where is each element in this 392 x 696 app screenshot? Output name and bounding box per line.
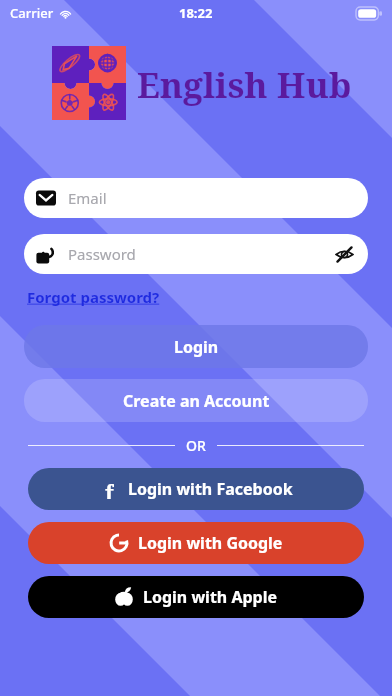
staticText: Login with Google xyxy=(138,532,283,554)
staticText: Password xyxy=(68,244,332,264)
button[interactable]: Password xyxy=(24,234,368,274)
staticText: Forgot password? xyxy=(27,287,160,307)
staticText: f xyxy=(105,479,114,499)
button[interactable]: Email xyxy=(24,178,368,218)
staticText: Email xyxy=(68,188,356,208)
button[interactable]: Login xyxy=(24,325,368,368)
button[interactable]: f xyxy=(28,468,364,510)
button[interactable]: Login with Google xyxy=(28,522,364,564)
button[interactable]: Show password xyxy=(332,242,356,266)
staticText: OR xyxy=(186,436,206,455)
staticText: English Hub xyxy=(137,61,352,109)
staticText: Login xyxy=(174,336,219,358)
staticText: Login with Apple xyxy=(143,586,278,608)
button[interactable]: Create an Account xyxy=(24,379,368,422)
staticText: Create an Account xyxy=(123,390,270,412)
staticText: Carrier xyxy=(10,4,54,22)
staticText: Login with Facebook xyxy=(128,478,293,500)
button[interactable]: Login with Apple xyxy=(28,576,364,618)
button[interactable]: Forgot password? xyxy=(27,285,160,309)
staticText: 18:22 xyxy=(179,4,213,22)
